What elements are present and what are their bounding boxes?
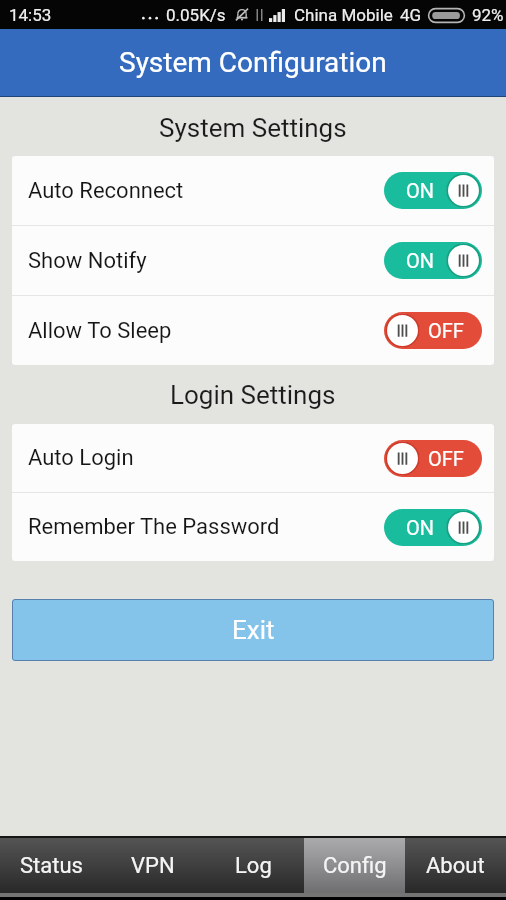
staticText: ON (406, 179, 435, 202)
button[interactable]: Switch off (384, 440, 482, 477)
staticText: 4G (400, 5, 422, 25)
staticText: System Settings (159, 113, 347, 143)
staticText: Config (323, 853, 387, 879)
staticText: Auto Login (28, 445, 134, 471)
button[interactable]: Show Notify (12, 226, 494, 295)
button[interactable]: Switch on (384, 242, 482, 279)
staticText: OFF (428, 447, 464, 470)
staticText: Remember The Password (28, 514, 280, 540)
staticText: 14:53 (9, 5, 52, 25)
staticText: ON (406, 249, 435, 272)
staticText: Allow To Sleep (28, 318, 172, 344)
staticText: System Configuration (119, 46, 387, 79)
button[interactable]: Switch off (384, 312, 482, 349)
staticText: Login Settings (170, 380, 336, 410)
button[interactable]: Switch on (384, 172, 482, 209)
button[interactable]: Status (0, 838, 102, 893)
button[interactable]: Config (304, 838, 405, 893)
staticText: Status (20, 853, 83, 879)
button[interactable]: Auto Reconnect (12, 156, 494, 225)
staticText: Exit (232, 615, 275, 645)
staticText: About (426, 853, 485, 879)
staticText: ON (406, 516, 435, 539)
staticText: 92% (472, 5, 504, 25)
button[interactable]: About (405, 838, 506, 893)
staticText: Show Notify (28, 248, 147, 274)
button[interactable]: Allow To Sleep (12, 296, 494, 365)
button[interactable]: Auto Login (12, 424, 494, 492)
staticText: OFF (428, 319, 464, 342)
button[interactable]: Log (203, 838, 304, 893)
staticText: 0.05K/s (166, 5, 226, 25)
button[interactable]: VPN (102, 838, 203, 893)
staticText: China Mobile (294, 5, 393, 25)
staticText: Auto Reconnect (28, 178, 184, 204)
button[interactable]: Exit (12, 599, 494, 661)
staticText: Log (235, 853, 272, 879)
button[interactable]: Remember The Password (12, 493, 494, 561)
button[interactable]: Switch on (384, 509, 482, 546)
staticText: VPN (131, 853, 175, 879)
